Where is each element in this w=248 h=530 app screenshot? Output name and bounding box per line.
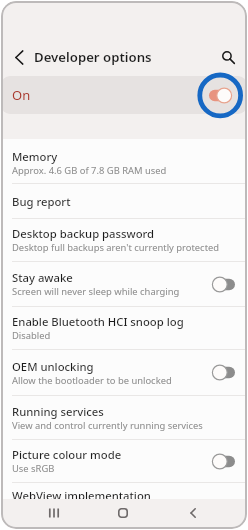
staticText: Desktop backup password <box>12 226 155 241</box>
staticText: WebView implementation <box>12 488 151 499</box>
button[interactable]: Running services <box>1 396 247 439</box>
button[interactable]: Recents <box>40 499 68 529</box>
staticText: Bug report <box>12 194 71 209</box>
button[interactable]: WebView implementation <box>1 483 247 499</box>
staticText: Stay awake <box>12 270 73 285</box>
button[interactable]: Navigate up <box>9 47 29 67</box>
button[interactable] <box>1 76 247 114</box>
staticText: Allow the bootloader to be unlocked <box>12 374 172 387</box>
button[interactable]: Home <box>109 499 137 529</box>
staticText: Picture colour mode <box>12 447 122 462</box>
staticText: Approx. 4.6 GB of 7.8 GB RAM used <box>12 164 167 177</box>
staticText: Desktop full backups aren't currently pr… <box>12 241 220 254</box>
button[interactable]: Picture colour mode <box>1 440 247 482</box>
button[interactable]: Picture colour mode <box>214 454 235 469</box>
button[interactable]: Search <box>218 47 238 67</box>
button[interactable]: Enable Bluetooth HCI snoop log <box>1 307 247 349</box>
button[interactable]: Back <box>179 499 207 529</box>
button[interactable]: OEM unlocking <box>214 365 235 380</box>
staticText: Disabled <box>12 329 51 342</box>
staticText: Use sRGB <box>12 462 55 475</box>
button[interactable]: Memory <box>1 142 247 183</box>
staticText: OEM unlocking <box>12 359 94 374</box>
button[interactable]: Stay awake <box>214 277 235 292</box>
button[interactable]: Stay awake <box>1 262 247 306</box>
staticText: Screen will never sleep while charging <box>12 285 180 298</box>
staticText: Memory <box>12 149 58 164</box>
staticText: Running services <box>12 404 104 419</box>
button[interactable]: OEM unlocking <box>1 350 247 395</box>
button[interactable]: Bug report <box>1 184 247 218</box>
staticText: View and control currently running servi… <box>12 419 203 432</box>
staticText: Enable Bluetooth HCI snoop log <box>12 314 184 329</box>
staticText: On <box>12 86 31 104</box>
button[interactable]: Desktop backup password <box>1 219 247 261</box>
staticText: Developer options <box>34 48 152 66</box>
button[interactable]: Toggle developer options <box>196 76 242 114</box>
